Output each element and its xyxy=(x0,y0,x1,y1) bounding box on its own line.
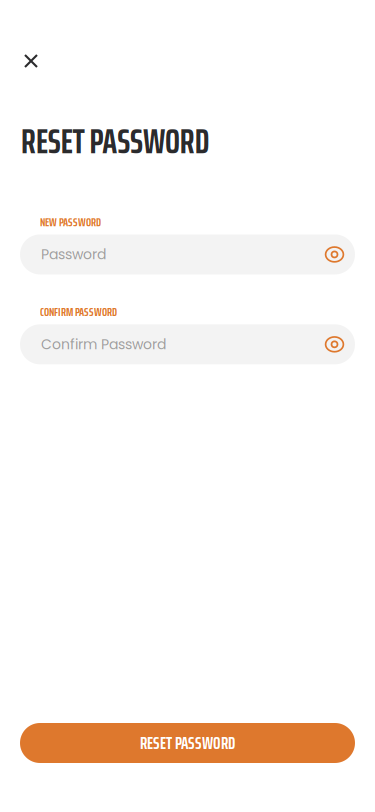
staticText: NEW PASSWORD xyxy=(40,213,101,231)
staticText: RESET PASSWORD xyxy=(140,729,235,757)
staticText: CONFIRM PASSWORD xyxy=(40,302,117,321)
staticText: RESET PASSWORD xyxy=(21,114,210,169)
button[interactable]: Confirm Password xyxy=(20,324,355,364)
button[interactable]: Show new password xyxy=(318,234,351,274)
button[interactable]: Show confirm password xyxy=(318,324,351,364)
button[interactable]: RESET PASSWORD xyxy=(20,723,355,763)
button[interactable]: Password xyxy=(20,234,355,274)
button[interactable]: Close xyxy=(9,39,53,83)
staticText: Confirm Password xyxy=(41,334,166,354)
staticText: Password xyxy=(41,245,106,264)
